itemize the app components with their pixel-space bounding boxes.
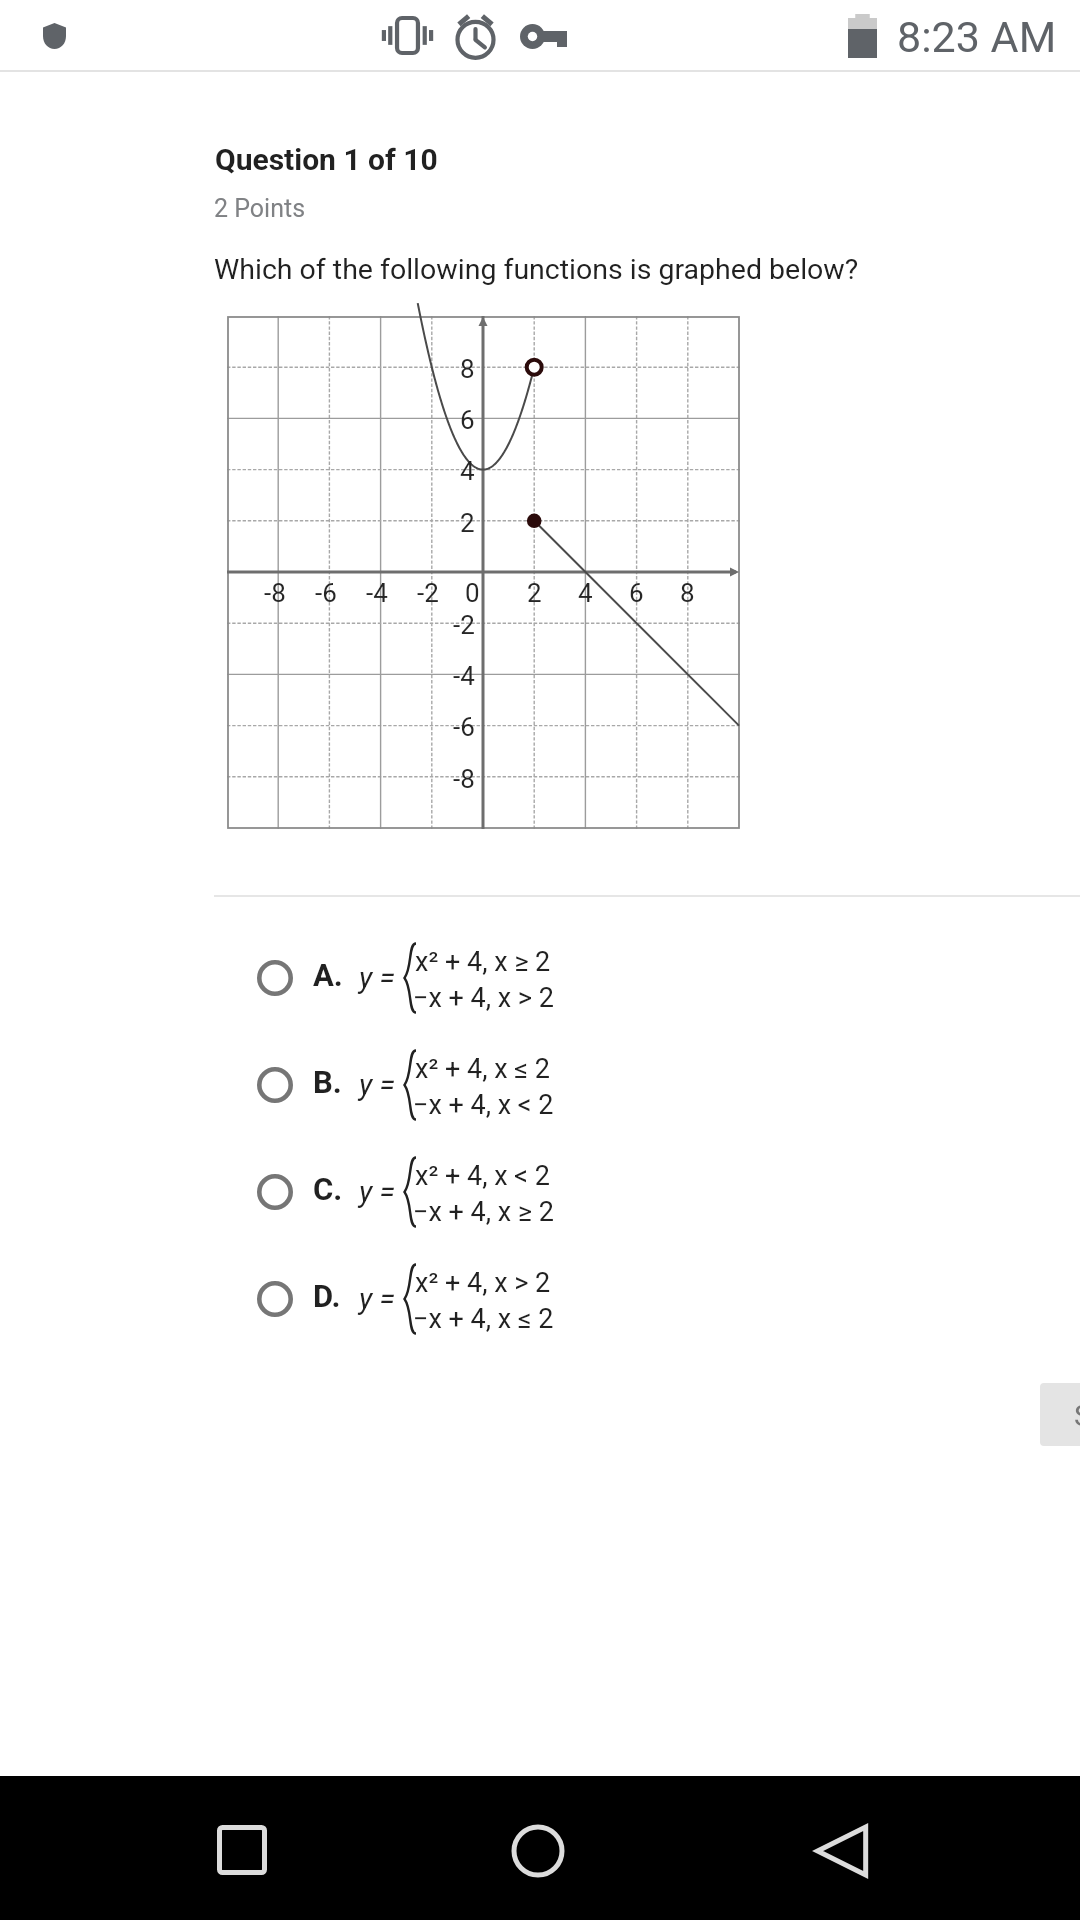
staticText: D.: [313, 1278, 341, 1314]
staticText: B.: [313, 1064, 342, 1100]
staticText: y =: [359, 1282, 395, 1316]
staticText: −x + 4, x ≤ 2: [413, 1303, 554, 1335]
staticText: 2: [527, 578, 542, 608]
staticText: 0: [465, 578, 480, 608]
staticText: 4: [460, 456, 475, 486]
staticText: -8: [264, 578, 286, 608]
staticText: A.: [313, 957, 343, 993]
staticText: C.: [313, 1171, 343, 1207]
staticText: -6: [315, 578, 337, 608]
staticText: y =: [359, 1068, 395, 1102]
staticText: x² + 4, x > 2: [415, 1267, 551, 1299]
staticText: 4: [578, 578, 593, 608]
staticText: -4: [366, 578, 388, 608]
button[interactable]: A.: [0, 924, 1080, 1032]
button[interactable]: C.: [0, 1138, 1080, 1246]
staticText: -2: [417, 578, 439, 608]
button[interactable]: B.: [0, 1031, 1080, 1139]
staticText: -6: [453, 712, 475, 742]
staticText: S: [1074, 1398, 1080, 1433]
staticText: y =: [359, 1175, 395, 1209]
staticText: 2 Points: [214, 194, 306, 223]
staticText: -2: [453, 610, 475, 640]
staticText: 6: [460, 405, 475, 435]
staticText: 8: [460, 354, 475, 384]
button[interactable]: Home: [490, 1803, 586, 1899]
staticText: -4: [453, 661, 475, 691]
button[interactable]: Back: [795, 1803, 891, 1899]
staticText: 8:23 AM: [897, 12, 1057, 62]
staticText: Which of the following functions is grap…: [214, 253, 859, 286]
staticText: −x + 4, x < 2: [413, 1089, 554, 1121]
staticText: −x + 4, x > 2: [413, 982, 554, 1014]
staticText: −x + 4, x ≥ 2: [413, 1196, 554, 1228]
staticText: x² + 4, x < 2: [415, 1160, 550, 1192]
staticText: x² + 4, x ≥ 2: [415, 946, 551, 978]
staticText: 8: [680, 578, 695, 608]
staticText: 6: [629, 578, 644, 608]
staticText: x² + 4, x ≤ 2: [415, 1053, 550, 1085]
staticText: y =: [359, 961, 395, 995]
staticText: -8: [453, 764, 475, 794]
staticText: 2: [460, 508, 475, 538]
button[interactable]: Recent apps: [194, 1802, 290, 1898]
button[interactable]: Submit: [1040, 1383, 1080, 1446]
staticText: Question 1 of 10: [215, 142, 438, 177]
button[interactable]: D.: [0, 1245, 1080, 1353]
